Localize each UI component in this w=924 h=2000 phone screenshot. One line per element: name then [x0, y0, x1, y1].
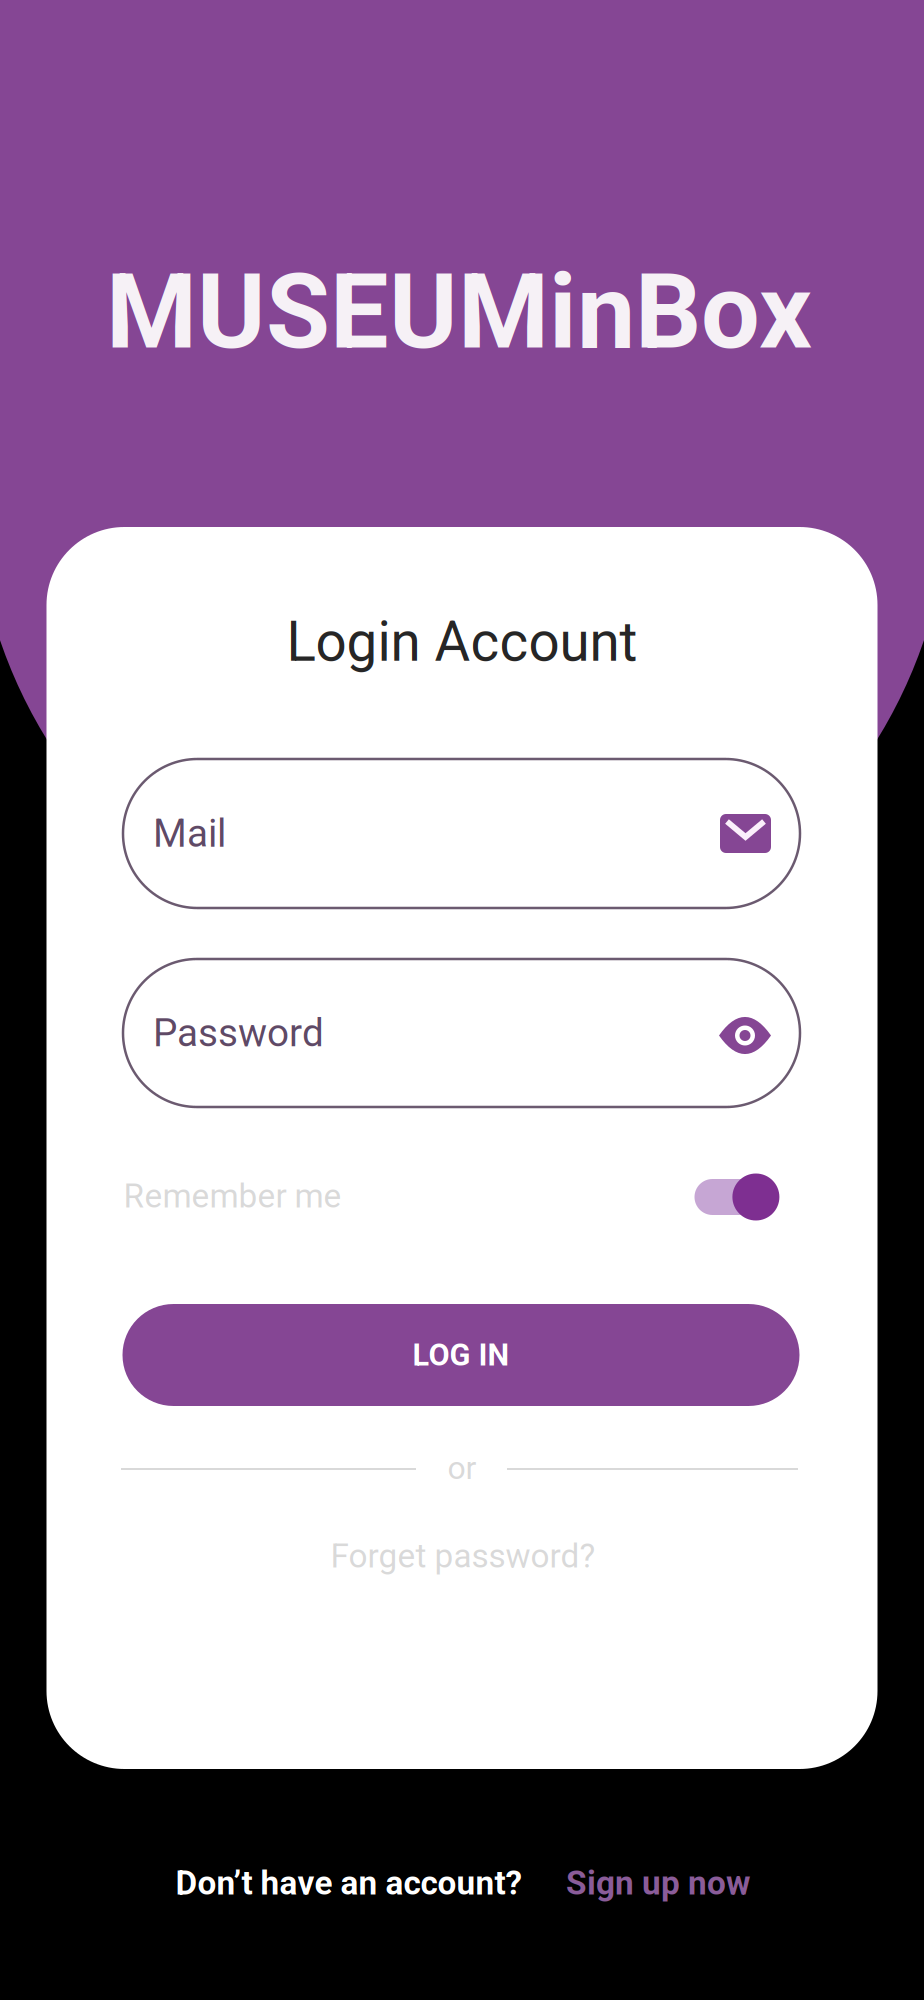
button[interactable]: Forget password?: [330, 1536, 595, 1576]
staticText: Mail: [153, 811, 226, 856]
staticText: MUSEUMinBox: [106, 251, 812, 373]
staticText: Remember me: [123, 1176, 341, 1216]
staticText: Forget password?: [330, 1536, 595, 1576]
button[interactable]: Show password: [719, 1018, 771, 1053]
staticText: Sign up now: [566, 1863, 750, 1903]
button[interactable]: LOG IN: [122, 1304, 799, 1406]
staticText: or: [447, 1449, 476, 1487]
button[interactable]: Mail: [123, 759, 800, 908]
button[interactable]: Remember me: [123, 1166, 779, 1226]
button[interactable]: Sign up now: [566, 1863, 750, 1903]
staticText: Login Account: [286, 610, 637, 674]
button[interactable]: Remember me: [694, 1173, 779, 1220]
staticText: Don’t have an account?: [175, 1863, 522, 1903]
staticText: Password: [153, 1010, 324, 1056]
staticText: LOG IN: [412, 1337, 509, 1373]
button[interactable]: Password: [123, 959, 800, 1107]
